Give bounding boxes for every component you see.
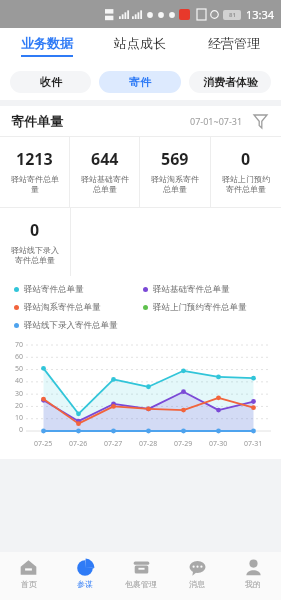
button[interactable]: 644 — [70, 137, 139, 207]
staticText: 寄件 — [129, 75, 151, 89]
staticText: 70 — [15, 340, 24, 350]
button[interactable]: 我的 — [225, 552, 281, 600]
staticText: 经营管理 — [208, 35, 260, 51]
staticText: 业务数据 — [21, 35, 73, 51]
staticText: 寄件单量 — [11, 113, 63, 129]
staticText: 0 — [241, 148, 251, 170]
staticText: 40 — [15, 376, 24, 386]
button[interactable]: 消息 — [169, 552, 225, 600]
button[interactable]: 站点成长 — [93, 28, 187, 64]
staticText: 驿站基础寄件总单量 — [153, 284, 230, 295]
button[interactable]: 0 — [211, 137, 281, 207]
button[interactable]: 经营管理 — [187, 28, 281, 64]
staticText: 13:34 — [246, 7, 275, 22]
staticText: 我的 — [245, 579, 261, 589]
staticText: 驿站上门预约寄件总单量 — [153, 302, 247, 313]
staticText: 0 — [30, 219, 40, 241]
staticText: 20 — [15, 401, 24, 411]
button[interactable]: 首页 — [0, 552, 57, 600]
staticText: 收件 — [40, 75, 62, 89]
staticText: 10 — [15, 413, 24, 423]
staticText: 驿站淘系寄件 总单量 — [151, 174, 199, 195]
staticText: 站点成长 — [114, 35, 166, 51]
staticText: 07-26 — [69, 439, 88, 449]
staticText: 驿站寄件总单量 — [24, 284, 84, 295]
staticText: 驿站上门预约 寄件总单量 — [222, 174, 270, 195]
button[interactable]: Filter — [250, 111, 270, 131]
button[interactable]: 驿站线下录入寄件总单量 — [14, 320, 143, 331]
button[interactable]: 驿站基础寄件总单量 — [143, 284, 273, 295]
staticText: 07-28 — [139, 439, 158, 449]
staticText: 569 — [161, 148, 189, 170]
button[interactable]: 1213 — [0, 137, 69, 207]
staticText: 30 — [15, 389, 24, 399]
button[interactable]: 业务数据 — [0, 28, 93, 64]
staticText: 07-29 — [174, 439, 193, 449]
staticText: 1213 — [16, 148, 53, 170]
staticText: 50 — [15, 364, 24, 374]
button[interactable]: 驿站寄件总单量 — [14, 284, 143, 295]
staticText: 首页 — [21, 579, 37, 589]
staticText: 81 — [229, 11, 236, 19]
staticText: 消息 — [189, 579, 205, 589]
staticText: 0 — [19, 425, 24, 435]
button[interactable]: 消费者体验 — [189, 71, 271, 93]
button[interactable]: 569 — [140, 137, 210, 207]
staticText: 参谋 — [77, 579, 93, 589]
button[interactable]: 寄件 — [99, 71, 181, 93]
staticText: 包裹管理 — [125, 579, 157, 589]
button[interactable]: 参谋 — [57, 552, 113, 600]
button[interactable]: 驿站淘系寄件总单量 — [14, 302, 143, 313]
staticText: 07-30 — [209, 439, 228, 449]
staticText: 07-25 — [34, 439, 53, 449]
staticText: 驿站淘系寄件总单量 — [24, 302, 101, 313]
staticText: 驿站基础寄件 总单量 — [81, 174, 129, 195]
button[interactable]: 包裹管理 — [113, 552, 169, 600]
staticText: 消费者体验 — [203, 75, 258, 89]
staticText: 驿站线下录入寄件总单量 — [24, 320, 118, 331]
staticText: 07-01~07-31 — [190, 115, 243, 127]
button[interactable]: 驿站上门预约寄件总单量 — [143, 302, 273, 313]
staticText: 驿站线下录入 寄件总单量 — [11, 245, 59, 266]
staticText: 07-27 — [104, 439, 123, 449]
staticText: 驿站寄件总单 量 — [11, 174, 59, 195]
staticText: 07-31 — [244, 439, 263, 449]
staticText: 644 — [91, 148, 119, 170]
button[interactable]: 0 — [0, 208, 70, 276]
staticText: 60 — [15, 352, 24, 362]
button[interactable]: 收件 — [10, 71, 91, 93]
